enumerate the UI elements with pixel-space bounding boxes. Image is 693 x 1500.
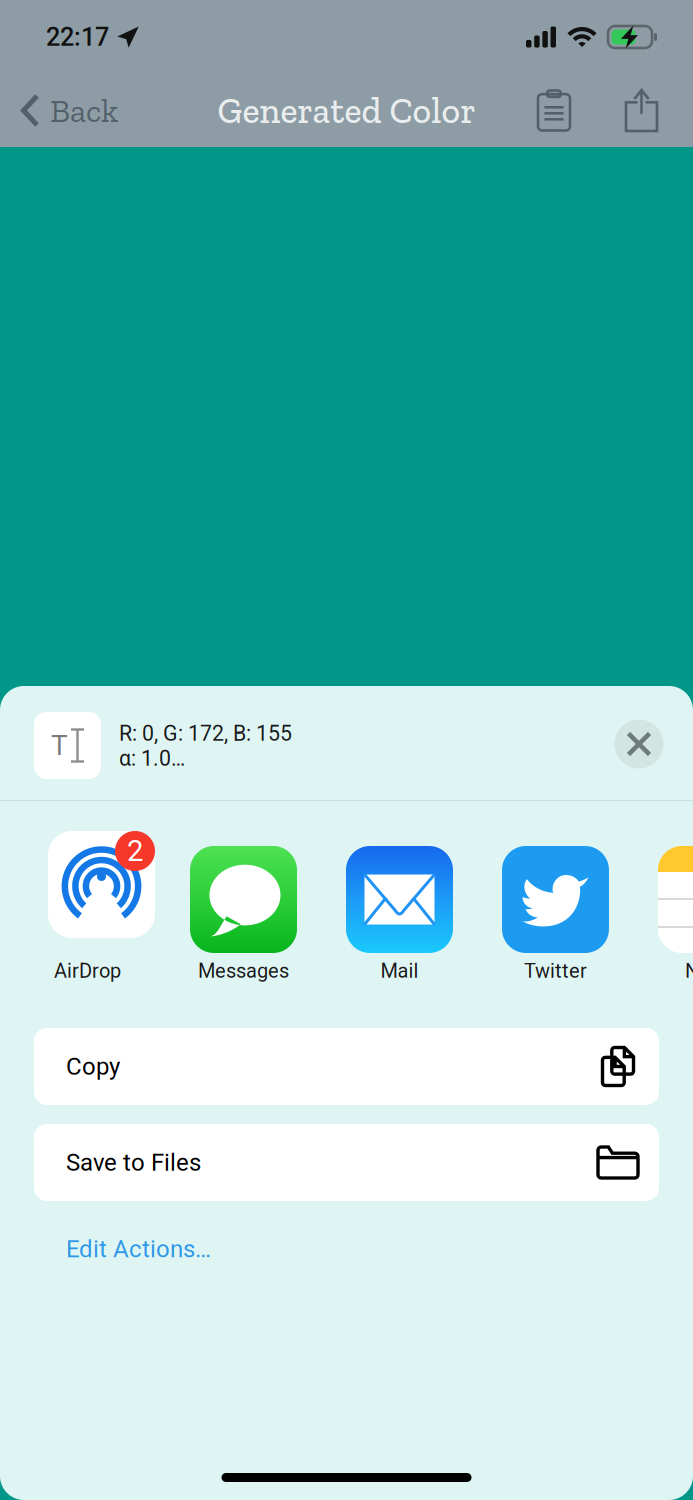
staticText: Back xyxy=(50,90,118,130)
staticText: Generated Color xyxy=(217,89,475,132)
button[interactable]: Copy xyxy=(34,1028,659,1105)
staticText: Mail xyxy=(380,959,418,983)
button[interactable]: Twitter xyxy=(502,846,609,953)
staticText: Messages xyxy=(198,959,289,983)
button[interactable]: Notes xyxy=(658,846,693,953)
staticText: Edit Actions… xyxy=(66,1235,211,1263)
staticText: 22:17 xyxy=(46,22,109,52)
button[interactable]: Mail xyxy=(346,846,453,953)
staticText: R: 0, G: 172, B: 155 xyxy=(119,721,292,746)
staticText: Notes xyxy=(685,959,693,983)
staticText: α: 1.0… xyxy=(119,746,185,771)
staticText: AirDrop xyxy=(54,959,121,983)
staticText: Copy xyxy=(66,1052,120,1080)
staticText: Twitter xyxy=(524,959,587,983)
button[interactable]: Back xyxy=(0,74,136,147)
button[interactable]: Copy to clipboard xyxy=(510,74,598,147)
button[interactable]: Save to Files xyxy=(34,1124,659,1201)
staticText: T xyxy=(51,729,68,762)
staticText: 2 xyxy=(127,834,143,868)
button[interactable]: Messages xyxy=(190,846,297,953)
button[interactable]: Edit Actions… xyxy=(0,1201,693,1299)
button[interactable]: AirDrop xyxy=(34,846,141,953)
staticText: Save to Files xyxy=(66,1148,201,1176)
button[interactable]: Share xyxy=(598,74,693,147)
button[interactable]: Close xyxy=(606,711,672,777)
